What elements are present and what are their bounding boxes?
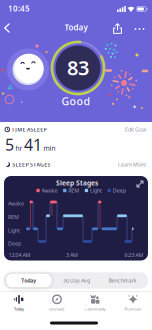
- staticText: hr: [15, 144, 22, 153]
- staticText: min: [43, 144, 55, 153]
- staticText: Today: [14, 306, 24, 312]
- staticText: Awake: [8, 200, 24, 207]
- staticText: Deep: [113, 187, 126, 194]
- staticText: REM: [8, 213, 19, 221]
- button[interactable]: Expand chart: [136, 180, 144, 188]
- staticText: 5: [5, 134, 14, 155]
- button[interactable]: Premium: [115, 292, 151, 314]
- staticText: Benchmark: [108, 277, 136, 284]
- staticText: 10:45: [8, 3, 30, 14]
- staticText: 30 Day Avg: [63, 277, 90, 284]
- button[interactable]: Learn More: [118, 161, 146, 168]
- staticText: TIME ASLEEP: [12, 126, 47, 133]
- button[interactable]: Today: [6, 274, 51, 287]
- staticText: Learn More: [118, 161, 146, 168]
- staticText: 41: [24, 134, 42, 155]
- staticText: Good: [61, 94, 90, 108]
- button[interactable]: 30 Day Avg: [53, 273, 99, 287]
- staticText: 12:04 AM: [8, 251, 30, 259]
- staticText: REM: [68, 187, 79, 194]
- staticText: Community: [84, 306, 105, 312]
- staticText: Premium: [124, 306, 141, 312]
- staticText: Today: [64, 22, 87, 33]
- staticText: Light: [8, 227, 20, 234]
- button[interactable]: Today: [1, 292, 37, 314]
- staticText: Sleep Stages: [56, 179, 98, 187]
- staticText: SLEEP STAGES: [12, 161, 50, 168]
- button[interactable]: Discover: [39, 292, 75, 314]
- button[interactable]: Edit Goal: [125, 126, 146, 133]
- staticText: Edit Goal: [125, 126, 146, 133]
- staticText: 6:23 AM: [124, 251, 143, 259]
- staticText: Light: [90, 187, 102, 194]
- staticText: Discover: [49, 306, 65, 312]
- button[interactable]: Share: [113, 23, 122, 34]
- staticText: Deep: [8, 240, 21, 247]
- button[interactable]: Benchmark: [99, 273, 145, 287]
- staticText: 83: [67, 54, 89, 81]
- staticText: 3 AM: [66, 251, 78, 259]
- button[interactable]: More: [131, 23, 147, 35]
- button[interactable]: Back: [2, 22, 12, 33]
- staticText: Awake: [42, 187, 58, 194]
- button[interactable]: Community: [77, 292, 113, 314]
- staticText: Today: [21, 277, 36, 284]
